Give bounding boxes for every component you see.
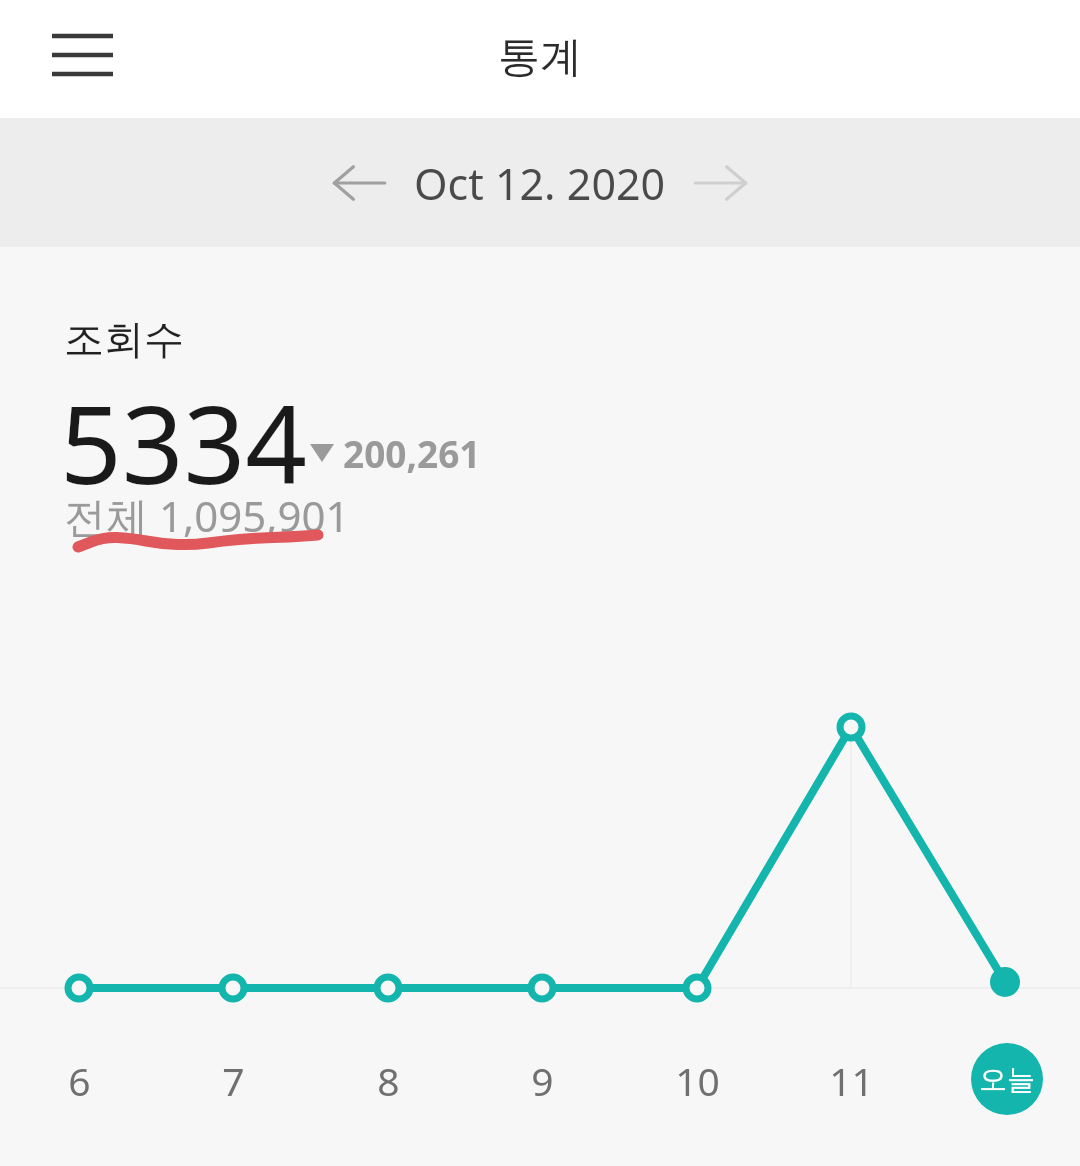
button[interactable]: 오늘 [971,1043,1043,1115]
button[interactable]: 11 [807,1052,895,1108]
staticText: 200,261 [343,428,481,478]
button[interactable]: 7 [189,1052,277,1108]
button[interactable]: 6 [35,1052,123,1108]
button[interactable]: Menu [22,6,142,110]
staticText: 6 [68,1054,91,1107]
button[interactable]: Next day [678,140,764,226]
staticText: 오늘 [979,1062,1035,1097]
staticText: 전체 1,095,901 [64,487,350,544]
button[interactable]: Previous day [316,140,402,226]
staticText: 10 [675,1054,720,1107]
staticText: 11 [829,1054,874,1107]
staticText: 조회수 [64,314,184,364]
staticText: 9 [531,1054,554,1107]
staticText: 통계 [498,31,582,84]
staticText: 5334 [60,369,308,516]
button[interactable]: 8 [344,1052,432,1108]
button[interactable]: 9 [498,1052,586,1108]
staticText: Oct 12. 2020 [414,154,666,213]
staticText: 7 [222,1054,245,1107]
button[interactable]: 10 [653,1052,741,1108]
staticText: 8 [377,1054,400,1107]
